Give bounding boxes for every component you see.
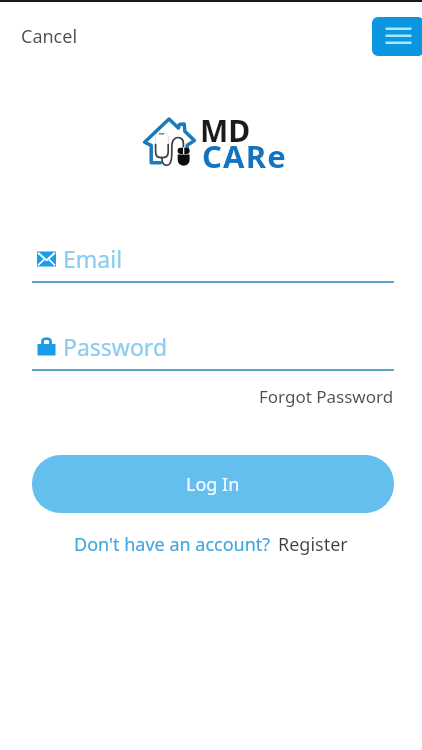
- staticText: Cancel: [21, 24, 78, 49]
- staticText: Email: [63, 243, 123, 274]
- staticText: Log In: [186, 472, 240, 497]
- button[interactable]: Forgot Password: [259, 385, 394, 408]
- staticText: MD: [200, 110, 251, 151]
- staticText: Password: [63, 331, 168, 362]
- staticText: Don't have an account?: [74, 532, 271, 557]
- button[interactable]: Register: [278, 532, 348, 557]
- button[interactable]: Don't have an account?: [74, 532, 271, 557]
- button[interactable]: Menu: [372, 17, 422, 56]
- button[interactable]: Cancel: [21, 24, 78, 49]
- staticText: Register: [278, 532, 348, 557]
- staticText: Forgot Password: [259, 385, 394, 408]
- button[interactable]: Log In: [32, 455, 394, 513]
- staticText: CARe: [202, 135, 287, 177]
